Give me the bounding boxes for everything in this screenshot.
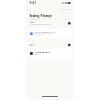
staticText: Today	[29, 21, 34, 23]
staticText: 9:41	[29, 1, 36, 5]
staticText: Testing Prompt	[29, 14, 51, 18]
button[interactable]: Response relevance score	[28, 29, 72, 39]
staticText: Sync completed, no issues found	[29, 23, 51, 25]
button[interactable]: Training job failed mid-run	[28, 48, 72, 58]
staticText: Response relevance score	[34, 32, 55, 34]
staticText: Last saved 2m	[29, 18, 39, 20]
staticText: New conversation	[59, 8, 72, 10]
staticText: Training job failed mid-run	[34, 52, 50, 53]
staticText: 8 h ago	[34, 54, 39, 55]
button[interactable]: More	[68, 44, 71, 46]
staticText: Alerts	[29, 44, 34, 46]
staticText: Evaluation run	[34, 34, 44, 36]
button[interactable]: More	[68, 22, 71, 25]
button[interactable]: New conversation	[59, 8, 72, 10]
